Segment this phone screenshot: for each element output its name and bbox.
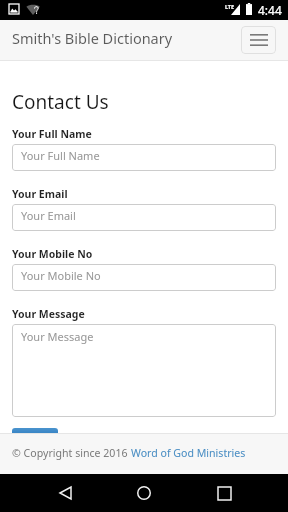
button[interactable]: Home xyxy=(120,474,168,512)
button[interactable]: Your Message xyxy=(12,324,276,417)
staticText: Your Mobile No xyxy=(21,268,101,283)
staticText: Your Full Name xyxy=(12,127,92,141)
staticText: Your Message xyxy=(21,329,94,344)
staticText: LTE xyxy=(225,3,234,10)
staticText: Your Email xyxy=(21,208,76,223)
button[interactable]: Your Full Name xyxy=(12,144,276,171)
staticText: Your Message xyxy=(12,307,85,321)
staticText: Submit xyxy=(17,433,54,448)
button[interactable]: Recent apps xyxy=(200,474,248,512)
button[interactable]: Open navigation menu xyxy=(241,26,276,54)
button[interactable]: Your Email xyxy=(12,204,276,231)
button[interactable]: Back xyxy=(40,474,88,512)
staticText: Your Full Name xyxy=(21,148,100,163)
staticText: Contact Us xyxy=(12,89,109,115)
staticText: Smith's Bible Dictionary xyxy=(12,28,173,48)
staticText: Your Email xyxy=(12,187,68,201)
button[interactable]: Your Mobile No xyxy=(12,264,276,291)
button[interactable]: Submit xyxy=(12,428,58,452)
button[interactable]: Word of God Ministries xyxy=(131,446,246,460)
staticText: © Copyright since 2016 xyxy=(12,446,131,460)
staticText: 4:44 xyxy=(258,2,282,18)
staticText: Your Mobile No xyxy=(12,247,93,261)
